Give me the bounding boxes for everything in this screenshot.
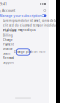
- staticText: Manage your subscription: [0, 13, 42, 18]
- staticText: ‹: [0, 7, 2, 14]
- staticText: et dolore magna aliqua.: [3, 28, 36, 32]
- staticText: Billing: [3, 33, 13, 37]
- staticText: Status: [3, 52, 10, 55]
- staticText: Change plan: [14, 50, 32, 54]
- button[interactable]: Toggle: [42, 14, 46, 17]
- staticText: Renewal: [3, 56, 14, 60]
- staticText: Charge: [3, 38, 13, 42]
- staticText: Payment: [3, 43, 14, 46]
- staticText: Invoice: [3, 47, 13, 51]
- button[interactable]: ‹: [0, 7, 15, 14]
- staticText: elit sed do eiusmod tempor incididunt la…: [3, 23, 60, 27]
- staticText: Support: [3, 61, 14, 64]
- button[interactable]: Change plan: [16, 49, 30, 55]
- button[interactable]: Manage your subscription: [0, 13, 42, 18]
- button[interactable]: Search: [43, 9, 46, 12]
- staticText: Lorem ipsum dolor sit amet, consectetur …: [3, 19, 60, 23]
- staticText: Plan name: [3, 29, 17, 33]
- staticText: learn more: [31, 50, 46, 54]
- staticText: 9:41: [0, 2, 7, 6]
- staticText: Account: [2, 8, 15, 13]
